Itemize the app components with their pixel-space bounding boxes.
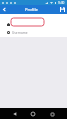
staticText: Profile <box>25 7 38 13</box>
button[interactable]: Back <box>10 109 20 119</box>
staticText: 9:30 <box>58 1 65 5</box>
button[interactable]: Back <box>0 5 9 14</box>
button[interactable]: Home <box>28 109 38 119</box>
button[interactable]: Recents <box>47 109 57 119</box>
button[interactable]: Save <box>58 5 67 14</box>
button[interactable] <box>11 18 44 26</box>
staticText: Username <box>12 31 28 35</box>
